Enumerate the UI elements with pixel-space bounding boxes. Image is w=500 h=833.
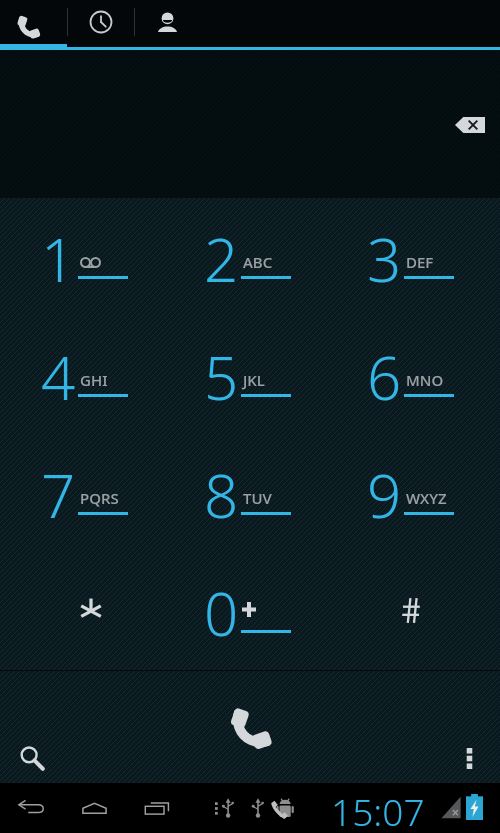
staticText: PQRS — [80, 488, 119, 508]
button[interactable]: Home — [70, 786, 118, 830]
button[interactable]: 5 — [168, 316, 331, 434]
button[interactable]: Backspace — [442, 103, 498, 147]
button[interactable]: 4 — [6, 316, 168, 434]
staticText: 0 — [204, 572, 239, 650]
staticText: 15:07 — [331, 786, 425, 833]
button[interactable]: 8 — [168, 434, 331, 552]
button[interactable]: 1 — [6, 198, 168, 316]
staticText: 4 — [41, 336, 76, 414]
button[interactable]: 3 — [331, 198, 494, 316]
button[interactable]: Phone — [0, 0, 67, 44]
staticText: ABC — [243, 252, 273, 272]
staticText: 2 — [204, 218, 239, 296]
button[interactable]: 2 — [168, 198, 331, 316]
staticText: DEF — [406, 252, 434, 272]
staticText: 5 — [204, 336, 239, 414]
button[interactable]: Back — [7, 786, 55, 830]
staticText: TUV — [243, 488, 272, 508]
button[interactable]: Search — [7, 733, 57, 783]
staticText: GHI — [80, 370, 108, 390]
button[interactable]: Recents — [133, 786, 181, 830]
button[interactable]: 6 — [331, 316, 494, 434]
button[interactable]: 9 — [331, 434, 494, 552]
button[interactable]: More options — [445, 734, 493, 782]
staticText: WXYZ — [406, 488, 447, 508]
staticText: 9 — [367, 454, 402, 532]
staticText: 7 — [41, 454, 76, 532]
button[interactable]: Call history — [67, 0, 134, 44]
button[interactable]: 0 — [168, 552, 331, 670]
button[interactable]: 7 — [6, 434, 168, 552]
button[interactable]: Call — [200, 679, 320, 759]
staticText: 1 — [41, 218, 76, 296]
staticText: 8 — [204, 454, 239, 532]
staticText: JKL — [243, 370, 265, 390]
staticText: 6 — [367, 336, 402, 414]
staticText: 3 — [367, 218, 402, 296]
button[interactable]: Contacts — [134, 0, 201, 44]
staticText: MNO — [406, 370, 444, 390]
button[interactable] — [331, 552, 494, 670]
button[interactable] — [6, 552, 168, 670]
